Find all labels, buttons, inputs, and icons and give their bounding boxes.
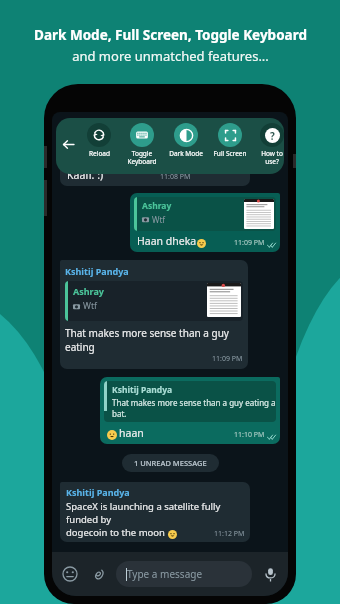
button[interactable]: Toggle Keyboard	[120, 118, 164, 166]
button[interactable]: Kshitij Pandya	[60, 134, 250, 186]
button[interactable]: Type a message	[116, 561, 252, 587]
button[interactable]: 1 UNREAD MESSAGE	[122, 454, 219, 472]
staticText: Dark Mode	[169, 149, 203, 158]
staticText: 1 UNREAD MESSAGE	[134, 458, 207, 468]
button[interactable]: Kshitij Pandya	[60, 260, 248, 369]
staticText: 11:08 PM	[160, 172, 191, 182]
staticText: That makes more sense than a guy eating …	[112, 397, 276, 419]
staticText: How to use?	[261, 149, 283, 166]
staticText: Kshitij Pandya	[112, 384, 173, 396]
button[interactable]: Dark Mode	[164, 118, 208, 158]
staticText: dogecoin to the moon	[66, 526, 168, 539]
staticText: 11:12 PM	[214, 529, 245, 539]
staticText: Kshitij Pandya	[67, 138, 124, 149]
staticText: and more unmatched features...	[72, 47, 269, 65]
staticText: haan	[119, 426, 144, 440]
button[interactable]: Kshitij Pandya	[60, 482, 250, 542]
staticText: ?	[270, 129, 275, 143]
staticText: Ashray	[142, 200, 172, 212]
staticText: 11:10 PM	[234, 430, 265, 440]
staticText: Kshitij Pandya	[66, 486, 130, 498]
staticText: That makes more sense than a guy eating	[65, 326, 243, 354]
staticText: Dark Mode, Full Screen, Toggle Keyboard	[34, 26, 307, 44]
staticText: Kher doge badh raha	[67, 152, 167, 165]
staticText: Ashray	[73, 285, 104, 297]
staticText: Wtf	[152, 214, 166, 225]
button[interactable]: Reload	[78, 118, 120, 158]
staticText: Haan dheka	[137, 234, 197, 248]
staticText: 11:09 PM	[212, 354, 243, 364]
button[interactable]: ?	[252, 118, 284, 166]
button[interactable]: Attach	[87, 563, 109, 585]
staticText: SpaceX is launching a satellite fully fu…	[66, 500, 245, 526]
button[interactable]: Ashray	[130, 193, 280, 252]
staticText: 11:09 PM	[234, 238, 265, 248]
staticText: Wtf	[83, 300, 97, 312]
staticText: Kshitij Pandya	[65, 265, 129, 277]
staticText: Reload	[89, 149, 110, 158]
staticText: Type a message	[127, 567, 203, 581]
button[interactable]: Kshitij Pandya	[100, 377, 280, 444]
button[interactable]: Full Screen	[208, 118, 252, 158]
staticText: Full Screen	[213, 149, 247, 158]
button[interactable]: Voice message	[259, 563, 281, 585]
button[interactable]: Back	[58, 134, 78, 154]
button[interactable]: Emoji	[59, 563, 81, 585]
staticText: Toggle Keyboard	[127, 149, 157, 166]
staticText: Kaafi. :)	[67, 168, 104, 182]
